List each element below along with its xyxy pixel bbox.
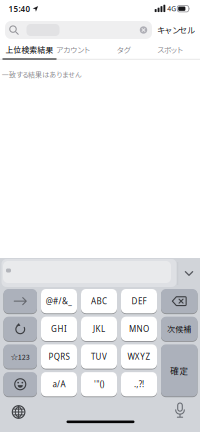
button[interactable]: JKL bbox=[81, 316, 117, 341]
staticText: 15:40 bbox=[8, 4, 30, 14]
button[interactable]: Dictate bbox=[170, 398, 190, 423]
staticText: '"() bbox=[94, 379, 104, 389]
staticText: 上位検索結果 bbox=[5, 44, 53, 55]
staticText: @#/&_ bbox=[46, 296, 72, 306]
button[interactable]: Search bbox=[5, 21, 152, 39]
button[interactable]: .,?! bbox=[121, 372, 157, 397]
button[interactable]: @#/&_ bbox=[41, 288, 77, 314]
button[interactable]: 次候補 bbox=[161, 316, 197, 341]
button[interactable]: アカウント bbox=[50, 42, 96, 58]
staticText: ABC bbox=[91, 296, 107, 306]
button[interactable]: キャンセル bbox=[151, 21, 200, 39]
staticText: スポット bbox=[157, 44, 183, 55]
staticText: TUV bbox=[91, 351, 107, 362]
staticText: 次候補 bbox=[167, 323, 191, 335]
button[interactable]: タグ bbox=[108, 42, 138, 58]
button[interactable]: a/A bbox=[41, 372, 77, 397]
button[interactable]: ☆123 bbox=[3, 344, 37, 369]
staticText: 4G bbox=[167, 4, 176, 13]
button[interactable]: カーソルを右へ bbox=[3, 288, 37, 314]
button[interactable]: DEF bbox=[121, 288, 157, 314]
staticText: MNO bbox=[129, 323, 149, 334]
button[interactable]: やり直し bbox=[3, 316, 37, 341]
button[interactable]: スポット bbox=[150, 42, 190, 58]
button[interactable]: Hide suggestions bbox=[179, 266, 199, 281]
staticText: DEF bbox=[132, 296, 146, 306]
button[interactable]: 確定 bbox=[161, 344, 197, 397]
staticText: a/A bbox=[53, 379, 65, 389]
staticText: GHI bbox=[51, 323, 67, 334]
button[interactable]: WXYZ bbox=[121, 344, 157, 369]
staticText: タグ bbox=[116, 44, 130, 55]
button[interactable]: Clear search text bbox=[138, 25, 148, 35]
button[interactable]: 絵文字 bbox=[3, 372, 37, 397]
button[interactable]: MNO bbox=[121, 316, 157, 341]
button[interactable]: 上位検索結果 bbox=[0, 42, 58, 58]
button[interactable]: 削除 bbox=[161, 288, 197, 314]
staticText: JKL bbox=[93, 323, 105, 334]
staticText: 確定 bbox=[170, 364, 188, 377]
button[interactable]: '"() bbox=[81, 372, 117, 397]
staticText: WXYZ bbox=[127, 351, 151, 362]
staticText: アカウント bbox=[56, 44, 90, 55]
button[interactable]: Next keyboard bbox=[7, 401, 30, 423]
staticText: 一致する結果はありません bbox=[2, 69, 81, 79]
button[interactable]: ABC bbox=[81, 288, 117, 314]
staticText: .,?! bbox=[134, 379, 144, 389]
staticText: PQRS bbox=[48, 351, 70, 362]
button[interactable]: GHI bbox=[41, 316, 77, 341]
staticText: ☆123 bbox=[11, 351, 30, 362]
staticText: キャンセル bbox=[157, 24, 195, 36]
button[interactable]: TUV bbox=[81, 344, 117, 369]
button[interactable]: PQRS bbox=[41, 344, 77, 369]
